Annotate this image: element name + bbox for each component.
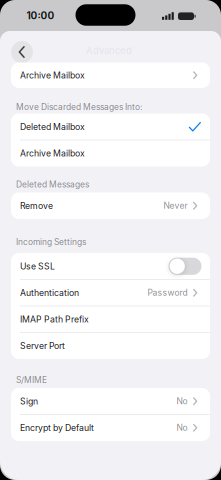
button[interactable]: Server Port (11, 332, 210, 359)
staticText: No (176, 423, 187, 433)
button[interactable]: Back (11, 41, 33, 63)
staticText: S/MIME (16, 375, 47, 385)
staticText: Use SSL (20, 261, 55, 271)
staticText: Advanced (86, 45, 132, 56)
button[interactable]: Archive Mailbox (11, 62, 210, 88)
button[interactable]: Deleted Mailbox (11, 113, 210, 140)
staticText: IMAP Path Prefix (20, 314, 89, 324)
staticText: Encrypt by Default (20, 422, 94, 433)
staticText: Sign (20, 396, 38, 406)
staticText: Archive Mailbox (20, 148, 85, 158)
staticText: Move Discarded Messages Into: (16, 102, 142, 112)
button[interactable]: Encrypt by Default (11, 414, 210, 441)
staticText: 10:00 (26, 9, 54, 22)
button[interactable]: Use SSL (11, 253, 210, 279)
button[interactable]: Remove (11, 192, 210, 219)
button[interactable]: IMAP Path Prefix (11, 306, 210, 332)
staticText: Deleted Mailbox (20, 121, 85, 132)
staticText: Authentication (20, 287, 79, 298)
staticText: Never (163, 201, 187, 211)
staticText: Incoming Settings (16, 237, 86, 247)
staticText: No (176, 396, 187, 406)
button[interactable]: Sign (11, 388, 210, 414)
staticText: Remove (20, 200, 53, 211)
staticText: Server Port (20, 340, 65, 351)
staticText: Password (147, 288, 187, 298)
staticText: Deleted Messages (16, 179, 89, 190)
staticText: Archive Mailbox (20, 70, 85, 80)
button[interactable]: Archive Mailbox (11, 140, 210, 166)
button[interactable]: Authentication (11, 279, 210, 306)
